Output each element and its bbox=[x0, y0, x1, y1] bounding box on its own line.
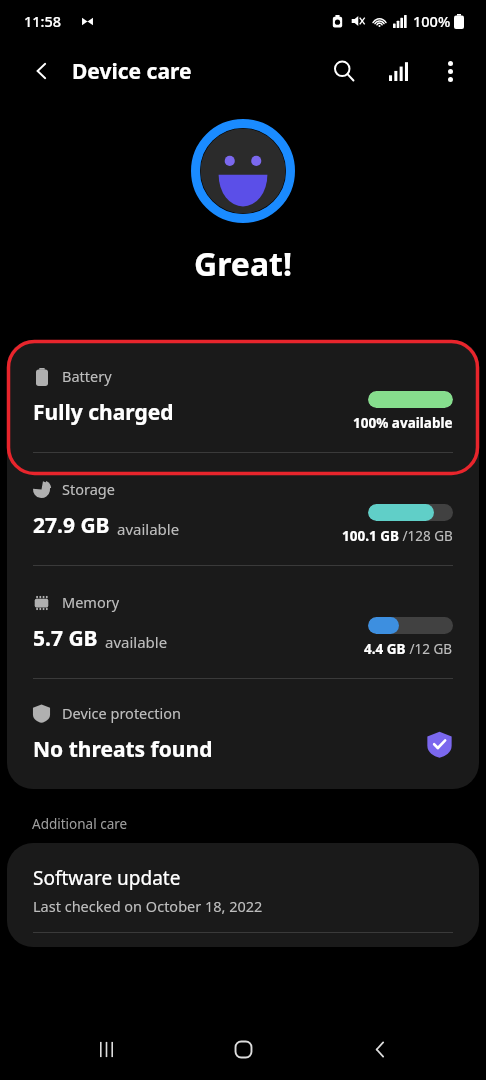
staticText: /12 GB bbox=[406, 640, 453, 658]
button[interactable]: Search bbox=[322, 49, 366, 93]
button[interactable]: Home bbox=[212, 1018, 274, 1080]
staticText: 4.4 GB bbox=[364, 640, 406, 658]
staticText: Storage bbox=[62, 479, 115, 499]
staticText: 100% available bbox=[353, 414, 453, 432]
staticText: Device protection bbox=[62, 703, 181, 723]
button[interactable]: Back bbox=[349, 1018, 411, 1080]
staticText: /128 GB bbox=[399, 527, 453, 545]
staticText: Device care bbox=[72, 57, 192, 86]
staticText: Fully charged bbox=[33, 398, 174, 427]
staticText: Additional care bbox=[32, 815, 128, 833]
staticText: Memory bbox=[62, 592, 120, 612]
button[interactable]: More options bbox=[428, 49, 472, 93]
staticText: available bbox=[105, 632, 168, 652]
staticText: 11:58 bbox=[24, 11, 62, 31]
staticText: Great! bbox=[194, 242, 293, 286]
button[interactable]: Storage bbox=[7, 453, 479, 566]
button[interactable]: Software update bbox=[7, 843, 479, 947]
staticText: Battery bbox=[62, 366, 112, 386]
button[interactable]: Battery bbox=[7, 340, 479, 453]
staticText: No threats found bbox=[33, 735, 213, 764]
button[interactable]: Recent apps bbox=[75, 1018, 137, 1080]
staticText: available bbox=[117, 519, 180, 539]
staticText: 27.9 GB bbox=[33, 511, 110, 540]
button[interactable]: Device protection bbox=[7, 679, 479, 789]
staticText: 5.7 GB bbox=[33, 624, 98, 653]
staticText: 100% bbox=[413, 11, 451, 31]
button[interactable]: Usage statistics bbox=[376, 49, 420, 93]
staticText: Software update bbox=[33, 865, 181, 891]
staticText: Last checked on October 18, 2022 bbox=[33, 896, 263, 916]
staticText: 100.1 GB bbox=[342, 527, 399, 545]
button[interactable]: Memory bbox=[7, 566, 479, 679]
button[interactable]: Back bbox=[20, 49, 64, 93]
